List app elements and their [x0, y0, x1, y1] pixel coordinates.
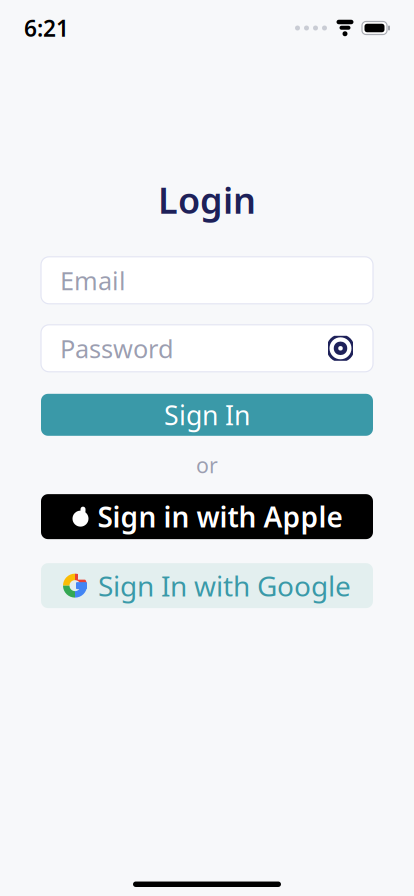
button[interactable]: Sign In — [41, 394, 373, 436]
staticText: 6:21 — [24, 13, 69, 43]
button[interactable]: Sign in with Apple — [41, 494, 373, 539]
staticText: Password — [60, 331, 174, 365]
button[interactable]: Email — [41, 257, 373, 304]
button[interactable]: Password — [41, 325, 373, 372]
staticText: Sign in with Apple — [97, 498, 342, 535]
staticText: Login — [158, 176, 256, 224]
staticText: or — [196, 451, 218, 479]
staticText: Sign In with Google — [98, 567, 351, 604]
staticText: Sign In — [164, 397, 250, 432]
staticText: Email — [60, 263, 126, 297]
button[interactable]: Sign In with Google — [41, 563, 373, 608]
